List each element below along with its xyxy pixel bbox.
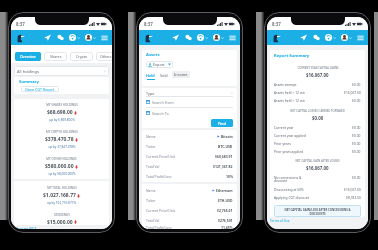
staticText: NET CAPITAL GAIN/LOSS AFTER CONCESSIONS … (278, 208, 357, 215)
button[interactable]: Export (146, 61, 173, 68)
staticText: Name (146, 134, 156, 139)
staticText: $16,067.00 (344, 187, 361, 191)
staticText: Ticker (146, 144, 156, 149)
staticText: Current Price/Unit (146, 154, 175, 159)
staticText: Others (100, 54, 112, 59)
button[interactable]: Home (271, 33, 281, 43)
staticText: Total Profit/Loss (146, 225, 172, 229)
button[interactable]: Find (211, 119, 233, 127)
staticText: 8:37 (272, 21, 281, 27)
button[interactable]: Search To (146, 108, 233, 118)
staticText: $0.00 (352, 149, 361, 153)
staticText: 8:37 (16, 21, 25, 27)
button[interactable]: Type (146, 90, 233, 96)
staticText: MY TOTAL HOLDINGS (47, 186, 77, 190)
staticText: Prior years applied (274, 149, 318, 153)
staticText: Applying CGT discount (274, 195, 318, 199)
button[interactable]: Income (172, 71, 190, 78)
staticText: Shares (50, 54, 62, 59)
button[interactable]: Search From (146, 97, 233, 107)
button[interactable]: Others (96, 52, 112, 61)
staticText: Current year applied (274, 133, 318, 137)
button[interactable]: Menu (357, 34, 364, 41)
staticText: Crypto (76, 54, 88, 59)
staticText: Current Price/Unit (146, 208, 175, 213)
button[interactable]: Account (341, 34, 352, 41)
staticText: Search From (152, 100, 174, 105)
staticText: up by 6,869.800% (49, 118, 75, 122)
staticText: DIVIDENDS (54, 213, 70, 217)
button[interactable]: Messages (185, 34, 192, 41)
button[interactable]: Send (44, 34, 51, 41)
button[interactable]: Messages (57, 34, 64, 41)
staticText: Search To (152, 111, 169, 116)
button[interactable]: Overview (15, 52, 41, 61)
staticText: Overview (20, 54, 36, 59)
staticText: $580,000.00 (45, 163, 74, 170)
staticText: All holdings (17, 69, 39, 74)
staticText: ETH-USD (218, 198, 233, 203)
staticText: Discounting at 50% (274, 187, 318, 191)
staticText: $2,765.01 (217, 208, 233, 213)
button[interactable]: Account (213, 34, 224, 41)
button[interactable]: Menu (229, 34, 236, 41)
staticText: NET CAPITAL LOSSES CARRIED FORWARD (290, 109, 345, 113)
staticText: Bitcoin (221, 134, 233, 139)
staticText: $16,067.00 (306, 165, 329, 171)
button[interactable]: Shares (44, 52, 67, 61)
button[interactable]: Help (69, 34, 80, 41)
staticText: $60,683.91 (215, 154, 233, 159)
staticText: Total Profit/Loss (146, 174, 172, 179)
button[interactable]: Send (172, 34, 179, 41)
staticText: $1,027,168.77 (43, 192, 76, 199)
staticText: Type (146, 91, 155, 96)
button[interactable]: Held (146, 73, 155, 80)
button[interactable]: Send (300, 34, 307, 41)
staticText: CURRENT YEAR CAPITAL GAINS (297, 66, 339, 70)
button[interactable]: Menu (101, 34, 108, 41)
staticText: $15,000.00 (47, 219, 73, 225)
staticText: $8,033.50 (346, 195, 361, 199)
button[interactable]: Home (143, 33, 153, 43)
staticText: $0.00 (352, 133, 361, 137)
staticText: MY SHARES HOLDINGS (46, 103, 78, 107)
staticText: Ticker (146, 198, 156, 203)
staticText: $68,698.00 (47, 109, 73, 116)
staticText: Open CGT Report (25, 87, 55, 92)
staticText: $121,367.82 (213, 164, 233, 169)
staticText: $0.00 (352, 98, 361, 102)
staticText: $0.00 (352, 125, 361, 129)
button[interactable]: Open CGT Report (21, 86, 59, 92)
staticText: Total Val (146, 218, 160, 223)
staticText: MY OTHER HOLDINGS (46, 157, 77, 161)
staticText: $378,470.78 (45, 136, 74, 143)
staticText: Total Val (146, 164, 160, 169)
staticText: BTC-USD (218, 144, 233, 149)
staticText: $16,067.00 (306, 72, 329, 78)
staticText: Summary (19, 79, 39, 85)
staticText: $0.00 (352, 82, 361, 86)
button[interactable]: Home (15, 33, 25, 43)
staticText: 11.45% (221, 225, 233, 229)
button[interactable]: Help (325, 34, 336, 41)
staticText: Current year (274, 125, 318, 129)
staticText: NET CAPITAL GAIN AFTER LOSSES (295, 159, 340, 163)
staticText: 8:37 (144, 21, 153, 27)
button[interactable]: Account (85, 34, 96, 41)
staticText: Name (146, 188, 156, 193)
staticText: up by 58,000.000% (48, 172, 76, 176)
staticText: Income (174, 72, 188, 77)
button[interactable]: Terms of Use (270, 219, 290, 223)
button[interactable]: Crypto (70, 52, 93, 61)
staticText: Export (153, 62, 165, 67)
staticText: Report Summary (274, 53, 310, 59)
staticText: Assets held > 12 mo (274, 98, 318, 102)
button[interactable]: All assets NZ $ (14, 226, 37, 229)
staticText: Assets held < 12 mo (274, 90, 318, 94)
button[interactable]: Messages (313, 34, 320, 41)
button[interactable]: Help (197, 34, 208, 41)
button[interactable]: Sold (160, 73, 168, 80)
button[interactable]: All holdings (14, 66, 109, 76)
staticText: Assets (146, 52, 160, 58)
staticText: $0.00 (352, 141, 361, 145)
